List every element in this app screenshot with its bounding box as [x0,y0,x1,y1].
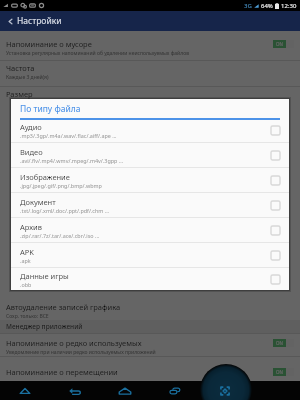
staticText: Документ [20,197,56,207]
button[interactable]: Видео [11,142,289,167]
button[interactable]: Размер [0,87,300,112]
staticText: Настройки [17,15,62,27]
button[interactable]: Напоминание о редко используемых [0,336,300,356]
staticText: Аудио [20,122,42,132]
staticText: Напоминание о редко используемых [6,338,142,348]
staticText: Каждые 3 дней(я) [6,74,49,81]
staticText: 64% [261,2,273,10]
staticText: Менеджер приложений [6,322,83,331]
button[interactable]: Back [50,381,100,400]
button[interactable]: Show apps [0,381,50,400]
staticText: Частота [6,63,35,73]
staticText: APK [20,247,34,257]
staticText: .avi/.flv/.mp4/.wmv/.mpeg/.m4v/.3gpp ... [20,157,124,164]
button[interactable]: Multi window [200,381,250,400]
staticText: Уведомление при наличии редко используем… [6,349,156,356]
staticText: Размер [6,89,33,99]
staticText: .mp3/.3gp/.m4a/.wav/.flac/.aiff/.ape ... [20,132,117,139]
staticText: .apk [20,257,31,264]
staticText: Видео [20,147,43,157]
button[interactable]: APK [11,242,289,267]
staticText: По типу файла [20,103,81,115]
staticText: Изображение [20,172,70,182]
staticText: Данные игры [20,271,69,281]
staticText: ON [276,41,283,47]
staticText: Архив [20,222,42,232]
staticText: .jpg/.jpeg/.gif/.png/.bmp/.wbmp [20,182,102,189]
staticText: Автоудаление записей графика [6,302,121,312]
staticText: .txt/.log/.xml/.doc/.ppt/.pdf/.chm ... [20,207,110,214]
staticText: Установка регулярных напоминаний об удал… [6,50,189,57]
button[interactable]: Аудио [11,117,289,142]
staticText: 3G [244,2,252,10]
staticText: .zip/.rar/.7z/.tar/.ace/.cbr/.iso ... [20,232,100,239]
staticText: Сохр. только: ВСЕ [6,313,49,320]
button[interactable]: Архив [11,217,289,242]
button[interactable]: Изображение [11,167,289,192]
button[interactable]: Home [100,381,150,400]
staticText: 12:30 [281,2,297,10]
button[interactable]: Автоудаление записей графика [0,300,300,320]
button[interactable]: Back [3,11,17,31]
button[interactable]: Частота [0,61,300,86]
staticText: ON [276,340,283,346]
button[interactable]: Recents [150,381,200,400]
staticText: Напоминание о мусоре [6,39,92,49]
button[interactable]: Напоминание о мусоре [0,37,300,60]
button[interactable]: Документ [11,192,289,217]
button[interactable]: Данные игры [11,267,289,290]
button[interactable]: Напоминание о перемещении [0,365,300,385]
staticText: .obb [20,281,32,288]
staticText: ON [276,369,283,375]
staticText: Напоминание о перемещении [6,367,118,377]
